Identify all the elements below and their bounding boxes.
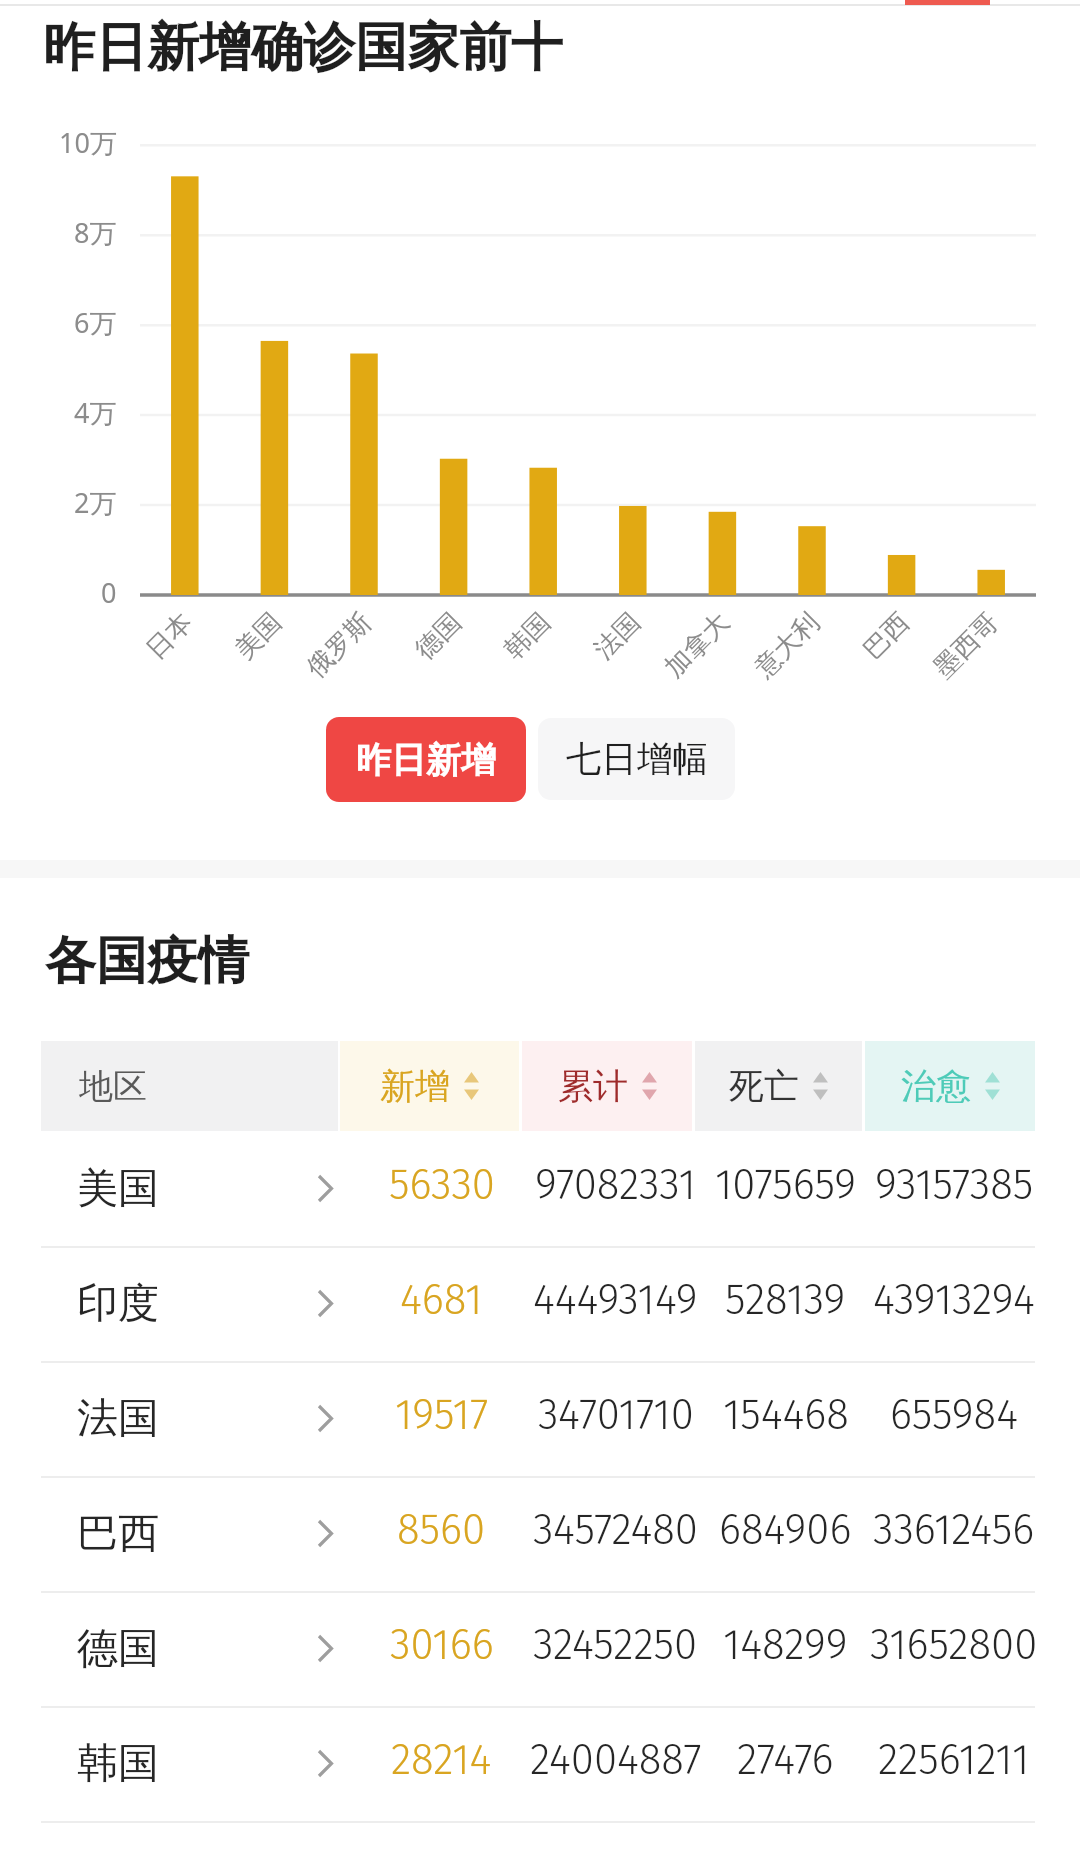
staticText: 累计 [558, 1064, 628, 1108]
button[interactable]: 治愈 [865, 1041, 1035, 1131]
button[interactable]: 德国 [41, 1591, 1035, 1706]
button[interactable]: 巴西 [41, 1476, 1035, 1591]
staticText: 33612456 [873, 1505, 1035, 1555]
staticText: 27476 [737, 1735, 834, 1785]
button[interactable]: 昨日新增 [326, 717, 526, 802]
button[interactable]: 美国 [41, 1131, 1035, 1246]
staticText: 22561211 [878, 1735, 1030, 1785]
button[interactable]: 韩国 [41, 1706, 1035, 1821]
staticText: 28214 [391, 1735, 492, 1785]
staticText: 97082331 [535, 1160, 696, 1210]
staticText: 30166 [390, 1620, 494, 1670]
staticText: 新增 [380, 1064, 450, 1108]
staticText: 俄罗斯 [300, 606, 378, 684]
other: 详情 [317, 1634, 337, 1663]
staticText: 各国疫情 [45, 929, 249, 993]
staticText: 意大利 [748, 606, 826, 684]
other: 详情 [317, 1174, 337, 1203]
staticText: 4万 [74, 394, 117, 431]
staticText: 6万 [74, 304, 117, 341]
staticText: 日本 [139, 606, 199, 666]
staticText: 655984 [890, 1390, 1018, 1440]
staticText: 法国 [77, 1393, 159, 1445]
staticText: 10万 [59, 124, 117, 161]
staticText: 韩国 [497, 606, 557, 666]
staticText: 43913294 [873, 1275, 1035, 1325]
staticText: 56330 [389, 1160, 495, 1210]
staticText: 684906 [719, 1505, 852, 1555]
staticText: 巴西 [856, 606, 916, 666]
staticText: 24004887 [530, 1735, 701, 1785]
staticText: 93157385 [875, 1160, 1034, 1210]
staticText: 0 [101, 574, 117, 611]
button[interactable]: 累计 [522, 1041, 692, 1131]
staticText: 德国 [408, 606, 468, 666]
button[interactable]: 七日增幅 [538, 718, 735, 800]
staticText: 德国 [77, 1623, 159, 1675]
staticText: 昨日新增 [356, 738, 496, 782]
staticText: 美国 [77, 1163, 159, 1215]
button[interactable]: 死亡 [695, 1041, 862, 1131]
staticText: 31652800 [870, 1620, 1038, 1670]
staticText: 七日增幅 [566, 737, 708, 782]
staticText: 8560 [397, 1505, 486, 1555]
other: 详情 [317, 1289, 337, 1318]
staticText: 4681 [400, 1275, 483, 1325]
button[interactable]: 新增 [340, 1041, 519, 1131]
staticText: 印度 [77, 1278, 159, 1330]
other: 详情 [317, 1749, 337, 1778]
staticText: 1075659 [715, 1160, 857, 1210]
button[interactable]: 法国 [41, 1361, 1035, 1476]
staticText: 昨日新增确诊国家前十 [43, 15, 563, 81]
staticText: 528139 [725, 1275, 846, 1325]
staticText: 死亡 [729, 1064, 799, 1108]
staticText: 34572480 [533, 1505, 698, 1555]
staticText: 地区 [79, 1065, 147, 1108]
staticText: 法国 [587, 606, 647, 666]
other: 详情 [317, 1519, 337, 1548]
staticText: 19517 [395, 1390, 489, 1440]
staticText: 154468 [723, 1390, 849, 1440]
staticText: 墨西哥 [927, 606, 1005, 684]
button[interactable]: 印度 [41, 1246, 1035, 1361]
staticText: 加拿大 [658, 606, 736, 684]
staticText: 34701710 [538, 1390, 694, 1440]
button[interactable]: 地区 [41, 1041, 338, 1131]
staticText: 美国 [228, 606, 288, 666]
staticText: 2万 [74, 484, 117, 521]
other: 详情 [317, 1404, 337, 1433]
staticText: 44493149 [533, 1275, 698, 1325]
staticText: 治愈 [901, 1064, 971, 1108]
staticText: 32452250 [533, 1620, 698, 1670]
staticText: 巴西 [77, 1508, 159, 1560]
staticText: 8万 [74, 214, 117, 251]
staticText: 148299 [723, 1620, 848, 1670]
staticText: 韩国 [77, 1738, 159, 1790]
